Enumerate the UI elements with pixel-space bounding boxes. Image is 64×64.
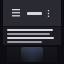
button[interactable] bbox=[3, 27, 61, 45]
button[interactable]: Navigate up bbox=[9, 6, 23, 20]
button[interactable]: More options bbox=[42, 6, 55, 20]
button[interactable]: Featured content bbox=[21, 47, 43, 62]
